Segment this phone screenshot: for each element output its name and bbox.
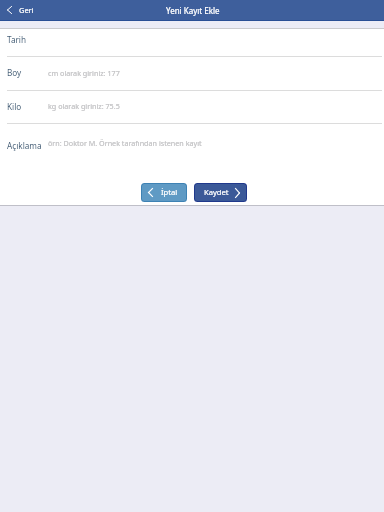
- button[interactable]: Geri: [7, 5, 34, 15]
- staticText: Geri: [19, 5, 34, 15]
- button[interactable]: Açıklama: [0, 124, 384, 168]
- staticText: Kaydet: [204, 187, 229, 197]
- button[interactable]: Tarih: [0, 29, 384, 56]
- staticText: İptal: [161, 187, 178, 197]
- button[interactable]: İptal: [141, 183, 187, 202]
- button[interactable]: Boy: [0, 57, 384, 90]
- staticText: cm olarak giriniz: 177: [48, 68, 120, 78]
- staticText: Yeni Kayıt Ekle: [166, 5, 220, 16]
- staticText: Boy: [7, 67, 22, 78]
- staticText: Tarih: [7, 34, 27, 45]
- staticText: Kilo: [7, 101, 22, 112]
- button[interactable]: Kaydet: [194, 183, 247, 202]
- button[interactable]: Kilo: [0, 91, 384, 123]
- staticText: kg olarak giriniz: 75.5: [48, 101, 120, 111]
- staticText: örn: Doktor M. Örnek tarafından istenen …: [48, 138, 202, 148]
- staticText: Açıklama: [7, 140, 42, 151]
